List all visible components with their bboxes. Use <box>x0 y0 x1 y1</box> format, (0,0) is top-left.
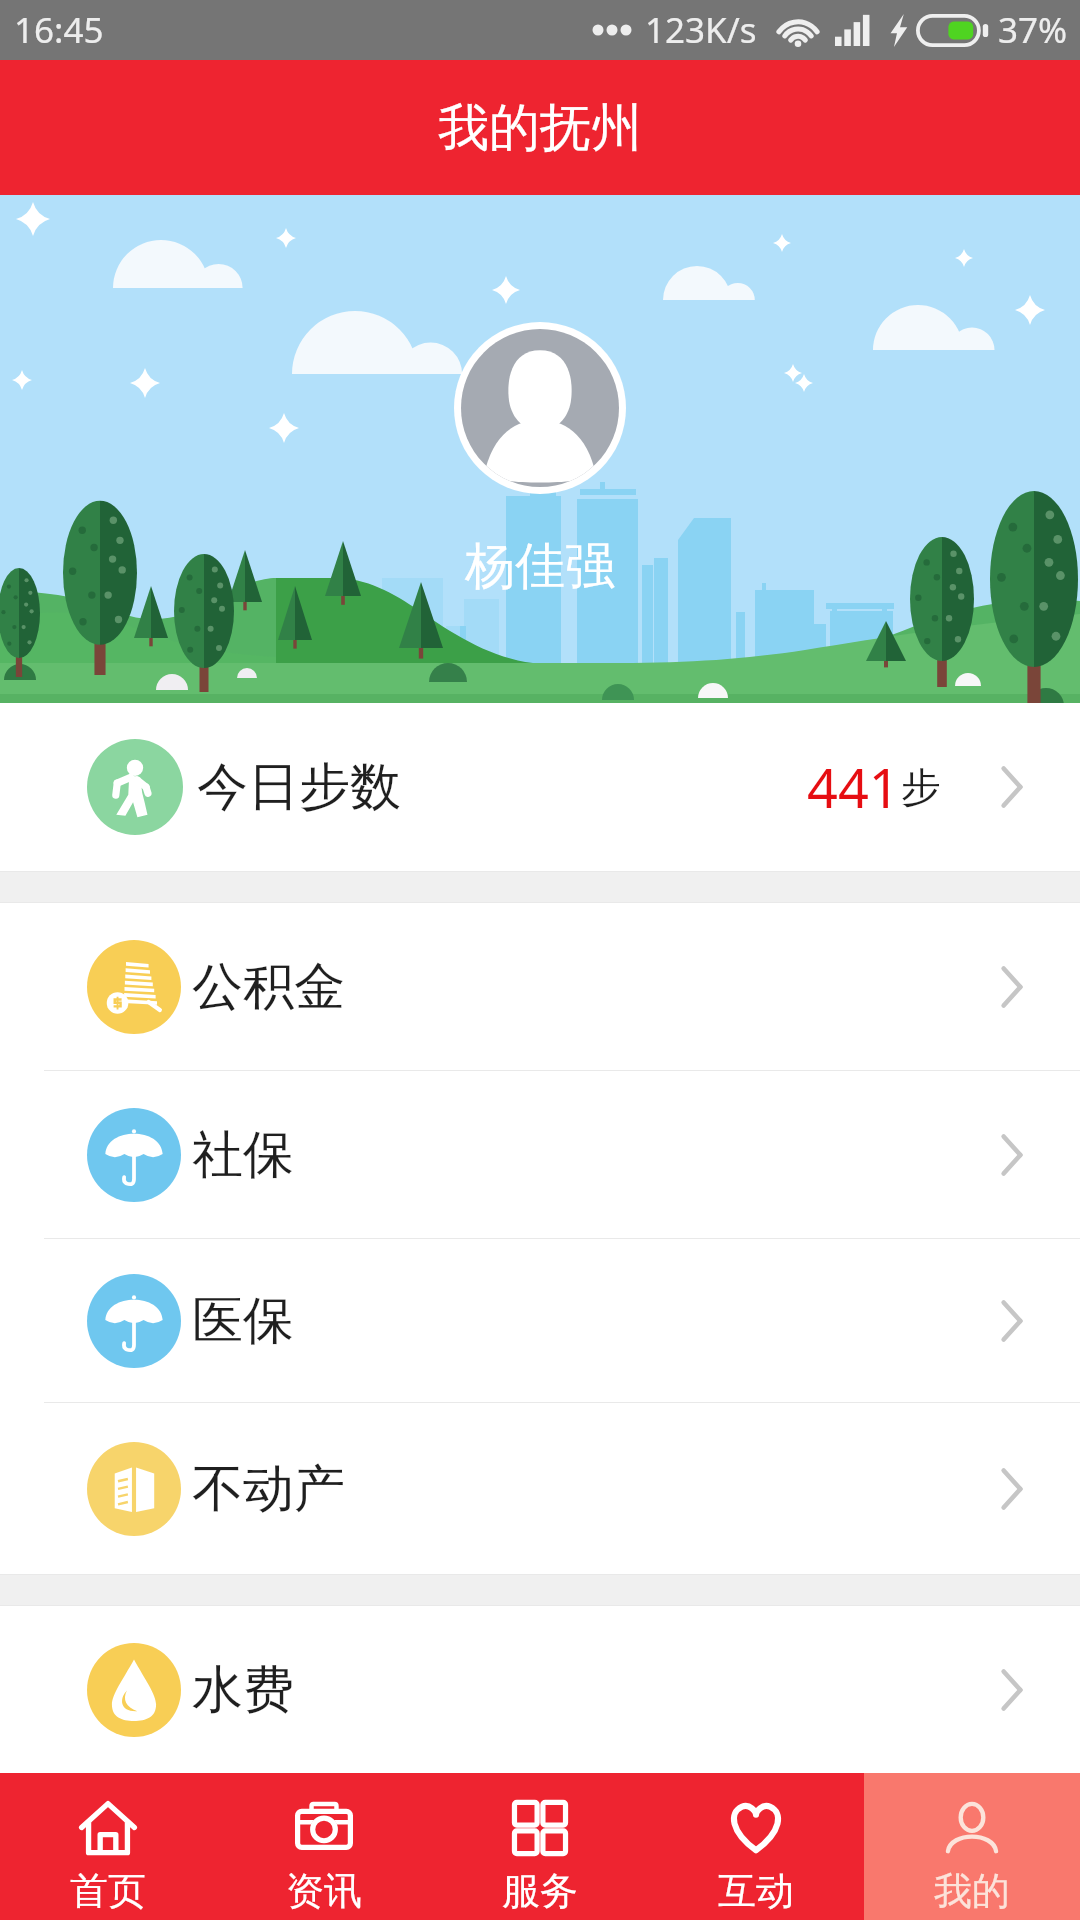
staticText: 我的 <box>934 1867 1010 1915</box>
staticText: 互动 <box>718 1867 794 1915</box>
button[interactable]: 水费 <box>0 1606 1080 1773</box>
button[interactable]: 首页 <box>0 1773 216 1920</box>
staticText: 公积金 <box>192 955 345 1019</box>
button[interactable]: 医保 <box>0 1239 1080 1402</box>
staticText: 步 <box>901 762 941 812</box>
staticText: 社保 <box>192 1123 294 1187</box>
staticText: 首页 <box>70 1867 146 1915</box>
staticText: 441 <box>807 750 900 824</box>
staticText: 不动产 <box>192 1457 345 1521</box>
button[interactable]: 资讯 <box>216 1773 432 1920</box>
staticText: 杨佳强 <box>465 535 615 598</box>
button[interactable]: 不动产 <box>0 1403 1080 1574</box>
button[interactable]: User avatar <box>454 322 626 494</box>
staticText: 服务 <box>502 1867 578 1915</box>
button[interactable]: 互动 <box>648 1773 864 1920</box>
staticText: 我的抚州 <box>438 96 642 160</box>
button[interactable]: 今日步数 <box>0 703 1080 871</box>
staticText: 37% <box>998 6 1068 54</box>
button[interactable]: 社保 <box>0 1071 1080 1238</box>
staticText: 资讯 <box>286 1867 362 1915</box>
staticText: 16:45 <box>14 6 104 54</box>
button[interactable]: 服务 <box>432 1773 648 1920</box>
staticText: 医保 <box>192 1289 294 1353</box>
staticText: 今日步数 <box>197 755 401 819</box>
staticText: 水费 <box>192 1658 294 1722</box>
staticText: 123K/s <box>645 6 757 54</box>
button[interactable]: 公积金 <box>0 903 1080 1070</box>
button[interactable]: 我的 <box>864 1773 1080 1920</box>
